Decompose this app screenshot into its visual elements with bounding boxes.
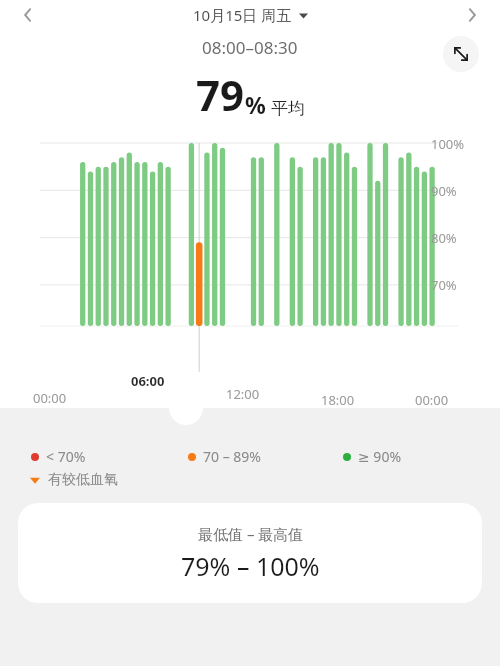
staticText: 10月15日 周五 xyxy=(193,5,292,25)
staticText: 79% – 100% xyxy=(181,549,320,583)
button[interactable]: Next day xyxy=(444,0,500,30)
button[interactable]: < 70% xyxy=(31,447,86,466)
staticText: 18:00 xyxy=(321,391,355,409)
staticText: 12:00 xyxy=(226,385,260,403)
button[interactable]: Expand chart xyxy=(443,36,479,72)
button[interactable]: ≥ 90% xyxy=(343,447,402,466)
staticText: 70 – 89% xyxy=(203,447,261,466)
staticText: 90% xyxy=(431,182,457,200)
staticText: % xyxy=(245,89,266,120)
staticText: 80% xyxy=(431,229,457,247)
staticText: 平均 xyxy=(271,98,305,119)
button[interactable]: 10月15日 周五 xyxy=(56,0,444,30)
staticText: ≥ 90% xyxy=(358,447,402,466)
staticText: 70% xyxy=(431,276,457,294)
staticText: 00:00 xyxy=(33,389,67,407)
button[interactable]: 最低值 – 最高值 xyxy=(18,503,482,603)
staticText: 100% xyxy=(431,135,465,153)
button[interactable]: Previous day xyxy=(0,0,56,30)
button[interactable]: 70 – 89% xyxy=(188,447,261,466)
staticText: 06:00 xyxy=(131,372,165,390)
staticText: 有较低血氧 xyxy=(48,471,118,489)
staticText: 00:00 xyxy=(415,391,449,409)
button[interactable]: 有较低血氧 xyxy=(30,471,118,489)
staticText: 08:00–08:30 xyxy=(202,36,298,59)
staticText: 79 xyxy=(196,66,245,123)
staticText: < 70% xyxy=(46,447,86,466)
staticText: 最低值 – 最高值 xyxy=(198,524,304,544)
